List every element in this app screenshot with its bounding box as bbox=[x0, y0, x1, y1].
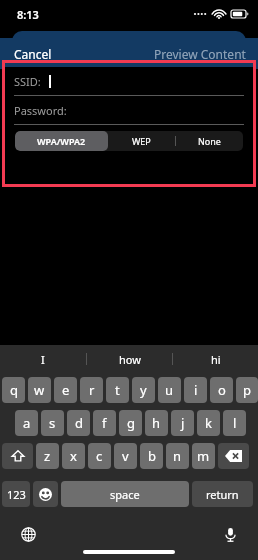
staticText: p bbox=[243, 381, 251, 399]
button[interactable]: h bbox=[145, 410, 168, 436]
staticText: I bbox=[41, 352, 45, 367]
button[interactable]: r bbox=[80, 377, 103, 403]
button[interactable]: j bbox=[171, 410, 194, 436]
button[interactable]: x bbox=[62, 443, 85, 469]
button[interactable]: c bbox=[88, 443, 111, 469]
button[interactable]: Shift bbox=[2, 443, 33, 469]
staticText: d bbox=[75, 414, 83, 432]
staticText: WEP bbox=[132, 135, 151, 147]
staticText: SSID: bbox=[14, 74, 41, 89]
staticText: 8:13 bbox=[17, 7, 39, 22]
staticText: s bbox=[49, 414, 56, 432]
button[interactable]: I bbox=[0, 348, 86, 370]
staticText: m bbox=[197, 447, 210, 465]
button[interactable]: o bbox=[210, 377, 233, 403]
staticText: k bbox=[205, 414, 212, 432]
staticText: n bbox=[173, 447, 182, 465]
staticText: b bbox=[148, 447, 156, 465]
button[interactable]: i bbox=[184, 377, 207, 403]
staticText: y bbox=[140, 381, 147, 399]
button[interactable]: Cancel bbox=[14, 46, 52, 62]
button[interactable]: s bbox=[41, 410, 64, 436]
button[interactable]: Change keyboard language bbox=[18, 524, 38, 544]
staticText: Preview Content bbox=[154, 46, 246, 62]
staticText: t bbox=[115, 381, 120, 399]
staticText: r bbox=[89, 381, 95, 399]
staticText: h bbox=[152, 414, 161, 432]
button[interactable]: None bbox=[176, 131, 243, 151]
staticText: 123 bbox=[7, 487, 26, 502]
button[interactable]: Emoji bbox=[33, 481, 58, 507]
staticText: l bbox=[233, 414, 237, 432]
staticText: c bbox=[96, 447, 103, 465]
button[interactable]: Backspace bbox=[218, 443, 249, 469]
button[interactable]: Password: bbox=[5, 96, 253, 124]
staticText: how bbox=[119, 352, 141, 367]
staticText: space bbox=[110, 487, 140, 502]
staticText: Cancel bbox=[14, 46, 52, 62]
button[interactable]: WPA/WPA2 bbox=[15, 131, 108, 151]
staticText: v bbox=[122, 447, 129, 465]
button[interactable]: l bbox=[223, 410, 246, 436]
button[interactable]: t bbox=[106, 377, 129, 403]
button[interactable]: y bbox=[132, 377, 155, 403]
button[interactable]: hi bbox=[173, 348, 258, 370]
button[interactable]: SSID: bbox=[5, 67, 253, 95]
staticText: a bbox=[23, 414, 31, 432]
button[interactable]: v bbox=[114, 443, 137, 469]
staticText: None bbox=[198, 135, 221, 147]
button[interactable]: space bbox=[61, 481, 189, 507]
button[interactable]: 123 bbox=[2, 481, 30, 507]
staticText: z bbox=[44, 447, 51, 465]
button[interactable]: a bbox=[15, 410, 38, 436]
button[interactable]: n bbox=[166, 443, 189, 469]
button[interactable]: q bbox=[2, 377, 25, 403]
button[interactable]: WEP bbox=[108, 131, 175, 151]
staticText: u bbox=[165, 381, 174, 399]
staticText: e bbox=[62, 381, 70, 399]
button[interactable]: b bbox=[140, 443, 163, 469]
button[interactable]: how bbox=[87, 348, 172, 370]
staticText: hi bbox=[211, 352, 221, 367]
staticText: o bbox=[218, 381, 226, 399]
button[interactable]: z bbox=[36, 443, 59, 469]
button[interactable]: return bbox=[192, 481, 253, 507]
button[interactable]: k bbox=[197, 410, 220, 436]
staticText: w bbox=[34, 381, 45, 399]
button[interactable]: g bbox=[119, 410, 142, 436]
staticText: return bbox=[206, 487, 239, 502]
button[interactable]: u bbox=[158, 377, 181, 403]
staticText: WPA/WPA2 bbox=[37, 135, 86, 147]
staticText: i bbox=[194, 381, 198, 399]
staticText: f bbox=[102, 414, 107, 432]
button[interactable]: d bbox=[67, 410, 90, 436]
staticText: j bbox=[181, 414, 185, 432]
staticText: x bbox=[70, 447, 77, 465]
button[interactable]: p bbox=[236, 377, 258, 403]
button[interactable]: f bbox=[93, 410, 116, 436]
staticText: Password: bbox=[14, 103, 67, 118]
staticText: q bbox=[10, 381, 18, 399]
button[interactable]: m bbox=[192, 443, 215, 469]
button[interactable]: Preview Content bbox=[154, 46, 246, 62]
button[interactable]: e bbox=[54, 377, 77, 403]
staticText: g bbox=[127, 414, 135, 432]
button[interactable]: w bbox=[28, 377, 51, 403]
button[interactable]: Dictation bbox=[220, 524, 240, 544]
